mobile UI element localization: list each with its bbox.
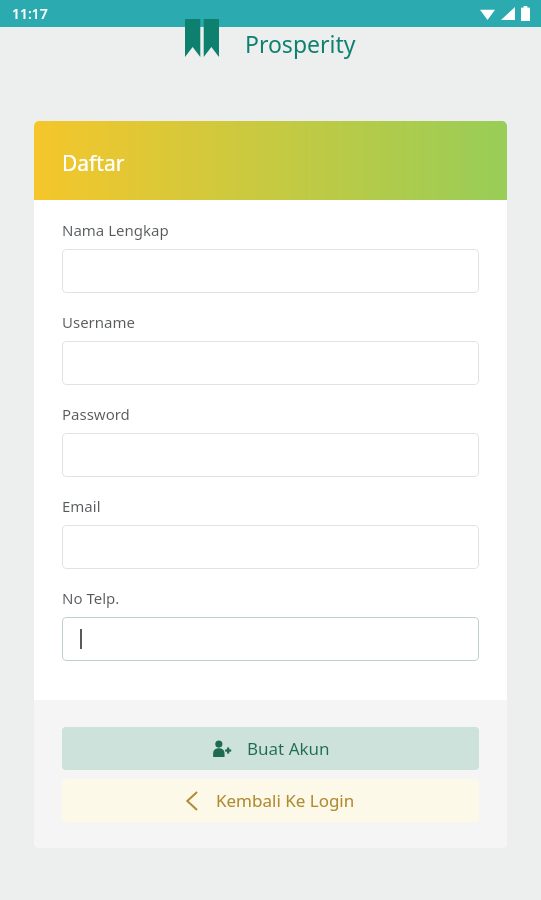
staticText: No Telp. (62, 588, 120, 608)
button[interactable] (62, 433, 479, 477)
staticText: Prosperity (245, 28, 356, 59)
button[interactable]: Kembali Ke Login (62, 779, 479, 822)
button[interactable] (62, 249, 479, 293)
staticText: Buat Akun (247, 737, 330, 760)
button[interactable] (62, 341, 479, 385)
other: Prosperity logo (185, 19, 219, 57)
staticText: 11:17 (12, 4, 48, 23)
staticText: Username (62, 312, 135, 332)
button[interactable] (62, 617, 479, 661)
staticText: Email (62, 496, 101, 516)
staticText: Kembali Ke Login (216, 789, 355, 812)
staticText: Password (62, 404, 130, 424)
staticText: Nama Lengkap (62, 220, 169, 240)
button[interactable] (62, 525, 479, 569)
button[interactable]: Buat Akun (62, 727, 479, 770)
staticText: Daftar (62, 149, 125, 178)
